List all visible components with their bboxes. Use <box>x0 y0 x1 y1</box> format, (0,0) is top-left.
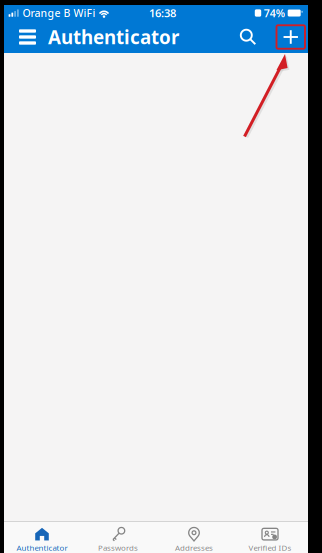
staticText: Authenticator <box>48 24 179 50</box>
staticText: Passwords <box>98 542 138 553</box>
button[interactable]: Search <box>233 21 262 53</box>
staticText: 74% <box>264 6 285 20</box>
staticText: Orange B WiFi <box>22 6 95 20</box>
button[interactable]: Menu <box>16 21 39 53</box>
button[interactable]: Authenticator <box>4 521 80 553</box>
staticText: Verified IDs <box>248 542 291 553</box>
staticText: 16:38 <box>149 5 176 21</box>
button[interactable]: Passwords <box>80 521 156 553</box>
button[interactable]: Add account <box>276 21 305 53</box>
button[interactable]: Verified IDs <box>232 521 308 553</box>
staticText: Authenticator <box>16 542 67 553</box>
staticText: Addresses <box>175 542 213 553</box>
button[interactable]: Authenticator <box>39 21 179 53</box>
button[interactable]: Addresses <box>156 521 232 553</box>
